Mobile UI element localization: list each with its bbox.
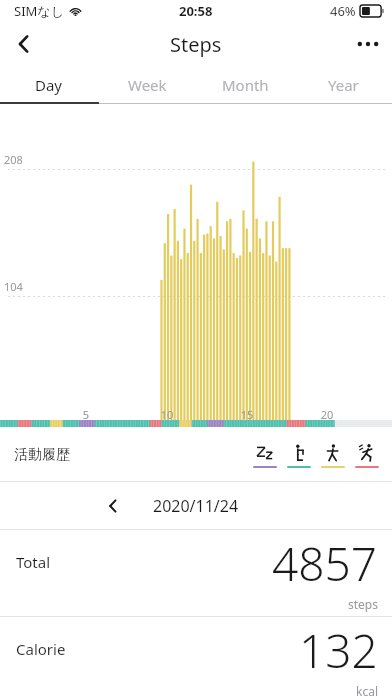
staticText: 208 — [4, 152, 23, 167]
staticText: 46% — [330, 2, 356, 20]
staticText: 104 — [4, 279, 23, 294]
staticText: 20 — [313, 407, 341, 422]
staticText: 10 — [153, 407, 181, 422]
staticText: 132 — [299, 619, 378, 682]
staticText: steps — [348, 596, 378, 612]
staticText: Week — [128, 75, 167, 95]
staticText: Total — [16, 552, 51, 572]
staticText: Year — [328, 75, 359, 95]
staticText: 5 — [72, 407, 100, 422]
button[interactable]: Week — [98, 66, 196, 104]
button[interactable]: Previous day — [93, 486, 133, 526]
button[interactable]: Total — [0, 530, 392, 616]
button[interactable]: Year — [294, 66, 392, 104]
staticText: 15 — [233, 407, 261, 422]
button[interactable]: Walking — [320, 443, 346, 468]
button[interactable]: 活動履歴 — [0, 429, 392, 481]
button[interactable]: Back — [0, 22, 48, 66]
staticText: 4857 — [272, 532, 378, 595]
staticText: Day — [35, 75, 63, 95]
staticText: SIMなし — [14, 2, 64, 20]
button[interactable]: More options — [344, 22, 392, 66]
staticText: 活動履歴 — [14, 446, 70, 464]
button[interactable]: Running — [354, 443, 380, 468]
staticText: Month — [222, 75, 269, 95]
staticText: 2020/11/24 — [153, 495, 239, 517]
button[interactable]: Sleep — [252, 443, 278, 468]
button[interactable]: Sedentary — [286, 443, 312, 468]
staticText: Calorie — [16, 639, 66, 659]
staticText: kcal — [356, 683, 378, 696]
button[interactable]: Calorie — [0, 617, 392, 696]
button[interactable]: Day — [0, 66, 98, 104]
button[interactable]: Month — [196, 66, 294, 104]
staticText: Steps — [170, 31, 222, 58]
staticText: 20:58 — [179, 2, 213, 20]
